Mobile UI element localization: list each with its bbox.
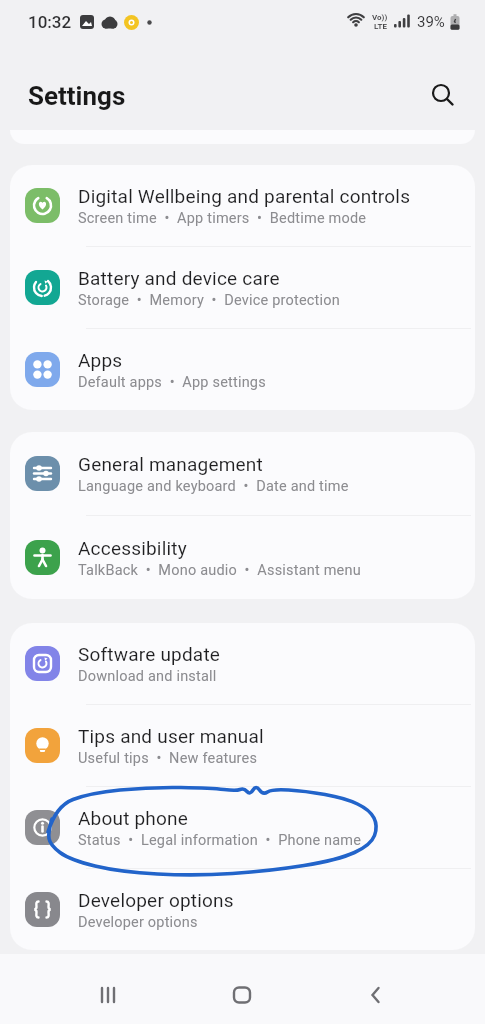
button[interactable]: About phone (10, 787, 475, 868)
staticText: General management (78, 453, 263, 475)
staticText: About phone (78, 807, 189, 829)
button[interactable]: Battery and device care (10, 247, 475, 328)
staticText: Vo)) (372, 13, 388, 22)
staticText: Useful tips • New features (78, 750, 258, 767)
staticText: Digital Wellbeing and parental controls (78, 185, 411, 207)
button[interactable]: General management (10, 432, 475, 515)
staticText: 39% (417, 13, 445, 31)
button[interactable]: Developer options (10, 869, 475, 950)
staticText: Accessibility (78, 537, 187, 559)
staticText: Default apps • App settings (78, 374, 266, 391)
button[interactable]: Accessibility (10, 516, 475, 599)
staticText: Storage • Memory • Device protection (78, 292, 340, 309)
button[interactable]: Apps (10, 329, 475, 410)
staticText: Developer options (78, 914, 198, 931)
staticText: Tips and user manual (78, 725, 264, 747)
staticText: Apps (78, 349, 123, 371)
button[interactable] (423, 75, 463, 115)
staticText: Language and keyboard • Date and time (78, 478, 349, 495)
button[interactable] (42, 966, 175, 1024)
button[interactable]: Tips and user manual (10, 705, 475, 786)
staticText: Developer options (78, 889, 234, 911)
button[interactable]: Software update (10, 623, 475, 704)
staticText: 10:32 (28, 12, 72, 32)
button[interactable] (309, 966, 443, 1024)
staticText: Download and install (78, 668, 217, 685)
staticText: Software update (78, 643, 221, 665)
staticText: Settings (28, 81, 126, 111)
staticText: TalkBack • Mono audio • Assistant menu (78, 562, 361, 579)
staticText: Battery and device care (78, 267, 280, 289)
staticText: Screen time • App timers • Bedtime mode (78, 210, 367, 227)
button[interactable] (175, 966, 309, 1024)
staticText: Status • Legal information • Phone name (78, 832, 362, 849)
staticText: LTE (374, 22, 387, 31)
button[interactable]: Digital Wellbeing and parental controls (10, 165, 475, 246)
